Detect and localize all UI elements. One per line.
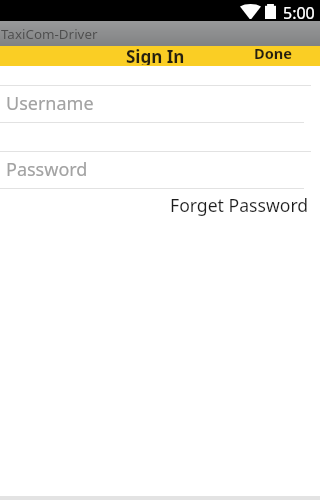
other: Battery [265, 4, 276, 19]
staticText: TaxiCom-Driver [1, 25, 98, 43]
button[interactable]: Done [254, 46, 320, 66]
button[interactable]: Forget Password [0, 193, 320, 217]
other: Wi-Fi signal [240, 4, 261, 19]
staticText: Password [6, 157, 88, 182]
staticText: Sign In [126, 45, 185, 65]
staticText: Done [254, 43, 293, 63]
staticText: Username [6, 91, 94, 116]
staticText: Forget Password [170, 193, 309, 217]
button[interactable]: Password [0, 151, 320, 189]
button[interactable]: Sign In [126, 46, 185, 66]
staticText: 5:00 [283, 2, 315, 23]
button[interactable]: Username [0, 85, 320, 123]
